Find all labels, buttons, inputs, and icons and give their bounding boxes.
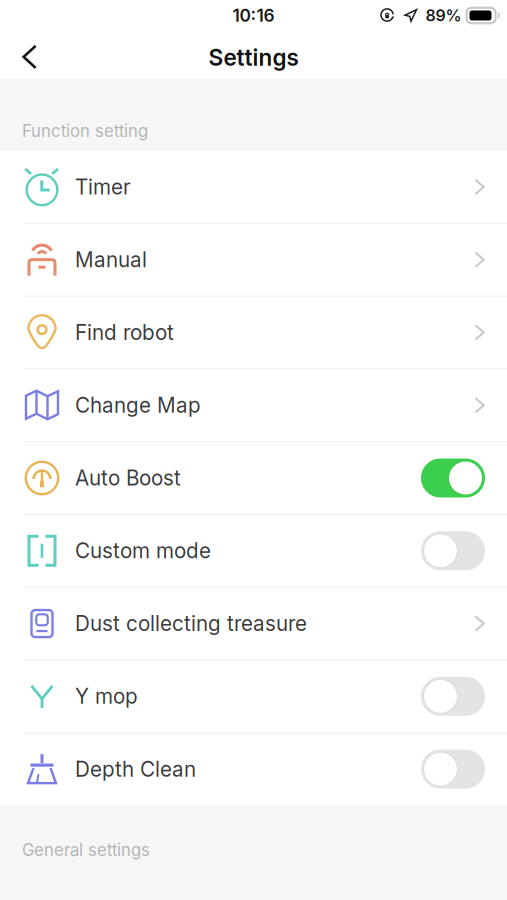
- staticText: Find robot: [75, 320, 174, 345]
- staticText: Dust collecting treasure: [75, 611, 307, 636]
- button[interactable]: Depth Clean: [0, 733, 507, 805]
- button[interactable]: Auto Boost: [0, 442, 507, 514]
- staticText: Depth Clean: [75, 757, 196, 782]
- button[interactable]: Back: [0, 39, 53, 70]
- staticText: Manual: [75, 247, 147, 272]
- button[interactable]: Find robot: [0, 297, 507, 368]
- button[interactable]: Timer: [0, 151, 507, 223]
- staticText: 89%: [426, 6, 462, 25]
- staticText: General settings: [22, 840, 150, 860]
- staticText: Y mop: [75, 684, 138, 709]
- button[interactable]: Manual: [0, 224, 507, 296]
- button[interactable]: Custom mode: [0, 515, 507, 587]
- staticText: Auto Boost: [75, 465, 181, 490]
- button[interactable]: Change Map: [0, 369, 507, 441]
- staticText: Change Map: [75, 393, 201, 418]
- staticText: Custom mode: [75, 538, 211, 563]
- staticText: Timer: [75, 174, 131, 199]
- button[interactable]: Dust collecting treasure: [0, 588, 507, 659]
- staticText: Settings: [208, 44, 298, 71]
- staticText: Function setting: [22, 121, 148, 141]
- staticText: 10:16: [232, 5, 274, 26]
- button[interactable]: Y mop: [0, 660, 507, 732]
